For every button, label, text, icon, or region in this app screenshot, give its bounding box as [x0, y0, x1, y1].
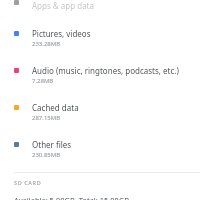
staticText: Audio (music, ringtones, podcasts, etc.) — [32, 65, 179, 76]
staticText: 230.85MB — [32, 151, 61, 159]
button[interactable]: Cached data — [0, 102, 200, 122]
button[interactable]: Available: 5.90GB Total: 15.98GB — [0, 195, 200, 200]
staticText: Apps & app data — [32, 0, 94, 11]
staticText: Pictures, videos — [32, 28, 91, 39]
staticText: 7.28MB — [32, 77, 54, 85]
staticText: Other files — [32, 139, 72, 150]
staticText: 233.28MB — [32, 40, 61, 48]
button[interactable]: Audio (music, ringtones, podcasts, etc.) — [0, 65, 200, 85]
button[interactable]: Apps & app data — [0, 0, 200, 12]
button[interactable]: Pictures, videos — [0, 28, 200, 48]
staticText: 287.15MB — [32, 114, 61, 122]
staticText: Cached data — [32, 102, 79, 113]
staticText: SD CARD — [14, 179, 42, 186]
button[interactable]: Other files — [0, 139, 200, 159]
staticText: Available: 5.90GB Total: 15.98GB — [14, 195, 130, 200]
